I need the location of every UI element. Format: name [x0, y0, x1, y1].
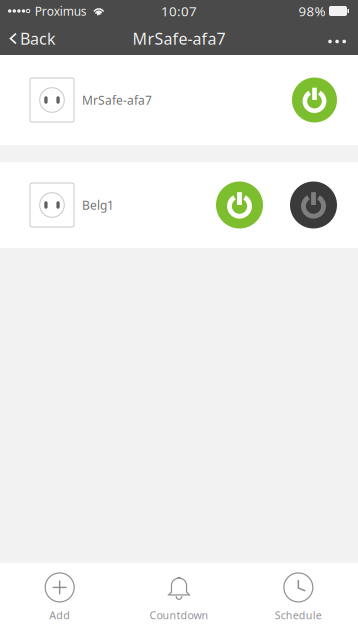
- staticText: MrSafe-afa7: [82, 92, 152, 108]
- staticText: Belg1: [82, 197, 114, 213]
- button[interactable]: Back: [3, 22, 62, 55]
- button[interactable]: Add: [0, 562, 119, 641]
- button[interactable]: Countdown: [119, 562, 239, 641]
- button[interactable]: More options: [319, 26, 355, 50]
- button[interactable]: Turn off: [292, 77, 337, 122]
- staticText: 98%: [298, 2, 325, 20]
- staticText: Proximus: [35, 3, 87, 19]
- button[interactable]: Turn off: [216, 181, 263, 228]
- staticText: Countdown: [149, 608, 208, 622]
- staticText: Schedule: [275, 608, 322, 622]
- staticText: Back: [20, 28, 56, 49]
- staticText: 10:07: [161, 2, 197, 20]
- staticText: Add: [49, 608, 70, 622]
- button[interactable]: Turn on: [290, 181, 337, 228]
- button[interactable]: Schedule: [239, 562, 358, 641]
- staticText: MrSafe-afa7: [132, 28, 225, 49]
